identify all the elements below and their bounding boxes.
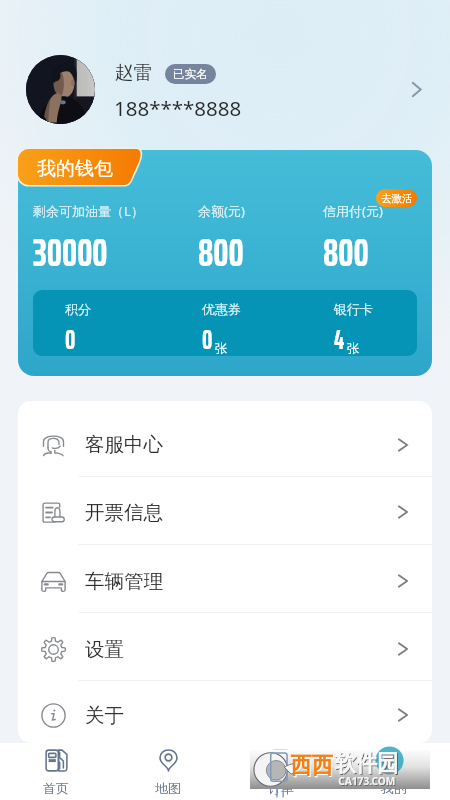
button[interactable]: 地图 xyxy=(112,743,224,800)
staticText: 积分 xyxy=(65,301,91,317)
staticText: 西西 xyxy=(291,752,334,781)
staticText: 首页 xyxy=(43,780,69,796)
staticText: 我的 xyxy=(381,780,407,796)
staticText: 赵雷 xyxy=(115,61,152,84)
staticText: 软件园 xyxy=(335,749,398,778)
button[interactable]: 客服中心 xyxy=(18,401,432,477)
staticText: 设置 xyxy=(85,637,124,662)
button[interactable]: 我的 xyxy=(337,743,450,800)
staticText: 西西 xyxy=(290,751,333,780)
button[interactable]: 去激活 xyxy=(376,189,417,207)
staticText: CA173.COM xyxy=(338,773,396,788)
button[interactable]: 关于 xyxy=(18,681,432,743)
staticText: 关于 xyxy=(85,703,124,728)
staticText: 30000 xyxy=(33,223,108,283)
staticText: 0 xyxy=(202,319,213,356)
staticText: 800 xyxy=(198,223,244,283)
staticText: 4 xyxy=(334,319,345,356)
staticText: 我的钱包 xyxy=(37,157,113,181)
staticText: 0 xyxy=(65,319,76,356)
staticText: 去激活 xyxy=(381,192,413,205)
button[interactable]: 赵雷 xyxy=(0,0,450,150)
staticText: 剩余可加油量（L） xyxy=(33,202,144,220)
staticText: 客服中心 xyxy=(85,432,163,457)
button[interactable]: 我的钱包 xyxy=(18,149,145,185)
button[interactable]: 开票信息 xyxy=(18,477,432,545)
staticText: 开票信息 xyxy=(85,500,163,525)
button[interactable]: Profile details xyxy=(404,77,428,101)
staticText: 银行卡 xyxy=(334,301,373,317)
button[interactable]: 订单 xyxy=(224,743,337,800)
staticText: 张 xyxy=(215,341,228,356)
staticText: 地图 xyxy=(155,780,181,796)
staticText: 信用付(元) xyxy=(323,202,383,220)
button[interactable]: 设置 xyxy=(18,613,432,681)
staticText: 已实名 xyxy=(173,67,208,81)
staticText: CA173.COM xyxy=(339,774,397,789)
button[interactable]: 首页 xyxy=(0,743,112,800)
button[interactable]: 车辆管理 xyxy=(18,545,432,613)
staticText: 余额(元) xyxy=(198,202,245,220)
staticText: 订单 xyxy=(268,780,294,796)
staticText: 优惠券 xyxy=(202,301,241,317)
staticText: 188****8888 xyxy=(114,94,242,122)
staticText: 张 xyxy=(347,341,360,356)
staticText: 800 xyxy=(323,223,369,283)
staticText: 车辆管理 xyxy=(85,569,163,594)
staticText: 软件园 xyxy=(336,750,399,779)
